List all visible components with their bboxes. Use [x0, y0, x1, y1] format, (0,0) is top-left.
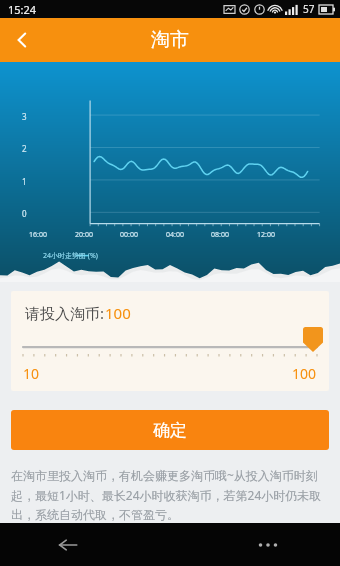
button[interactable]: 请投入淘币: — [11, 291, 329, 391]
staticText: 1 — [22, 176, 27, 187]
staticText: 10 — [23, 364, 40, 383]
button[interactable]: 确定 — [11, 410, 329, 450]
staticText: 20:00 — [75, 230, 93, 240]
staticText: 100 — [105, 303, 131, 323]
staticText: 在淘市里投入淘币，有机会赚更多淘币哦~从投入淘币时刻起，最短1小时、最长24小时… — [11, 467, 329, 523]
staticText: 淘市 — [151, 28, 189, 52]
staticText: 57 — [303, 2, 315, 16]
staticText: 08:00 — [211, 230, 229, 240]
staticText: 100 — [292, 364, 317, 383]
staticText: 3 — [22, 111, 27, 122]
staticText: 12:00 — [257, 230, 275, 240]
staticText: 16:00 — [29, 230, 47, 240]
staticText: 04:00 — [166, 230, 184, 240]
staticText: 15:24 — [8, 2, 37, 17]
button[interactable]: More options — [246, 523, 290, 566]
button[interactable]: Back — [46, 523, 90, 566]
button[interactable]: Back — [0, 18, 44, 62]
staticText: 确定 — [153, 420, 187, 441]
staticText: 请投入淘币: — [25, 303, 105, 323]
staticText: 2 — [22, 143, 27, 154]
staticText: 0 — [22, 208, 27, 219]
staticText: 24小时走势图 (%) — [43, 251, 98, 261]
staticText: 00:00 — [120, 230, 138, 240]
